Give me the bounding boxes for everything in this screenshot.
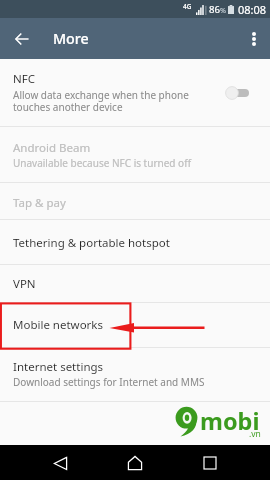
button[interactable]: More options xyxy=(240,25,268,53)
staticText: 4G xyxy=(183,2,192,11)
button[interactable]: Recent apps xyxy=(196,449,224,477)
staticText: Android Beam xyxy=(13,140,91,156)
staticText: % xyxy=(220,5,226,15)
staticText: Allow data exchange when the phone touch… xyxy=(13,88,189,114)
button[interactable] xyxy=(0,126,270,182)
button[interactable] xyxy=(0,264,270,302)
button[interactable]: NFC toggle xyxy=(222,83,254,103)
button[interactable]: Home xyxy=(121,449,149,477)
staticText: Tethering & portable hotspot xyxy=(13,235,170,251)
staticText: Internet settings xyxy=(13,359,104,375)
staticText: mobi xyxy=(200,405,260,437)
button[interactable] xyxy=(0,182,270,219)
button[interactable] xyxy=(0,347,270,401)
button[interactable]: Back xyxy=(8,25,36,53)
staticText: Tap & pay xyxy=(13,195,66,211)
button[interactable] xyxy=(0,59,270,126)
staticText: 08:08 xyxy=(238,2,267,17)
staticText: Mobile networks xyxy=(13,317,104,333)
button[interactable] xyxy=(0,219,270,264)
staticText: More xyxy=(53,29,89,48)
staticText: Unavailable because NFC is turned off xyxy=(13,156,192,170)
staticText: NFC xyxy=(13,71,35,87)
staticText: VPN xyxy=(13,276,36,292)
staticText: Download settings for Internet and MMS xyxy=(13,375,205,389)
button[interactable]: Back xyxy=(46,449,74,477)
staticText: .vn xyxy=(249,428,261,440)
staticText: 86 xyxy=(209,3,220,16)
button[interactable] xyxy=(0,302,270,347)
